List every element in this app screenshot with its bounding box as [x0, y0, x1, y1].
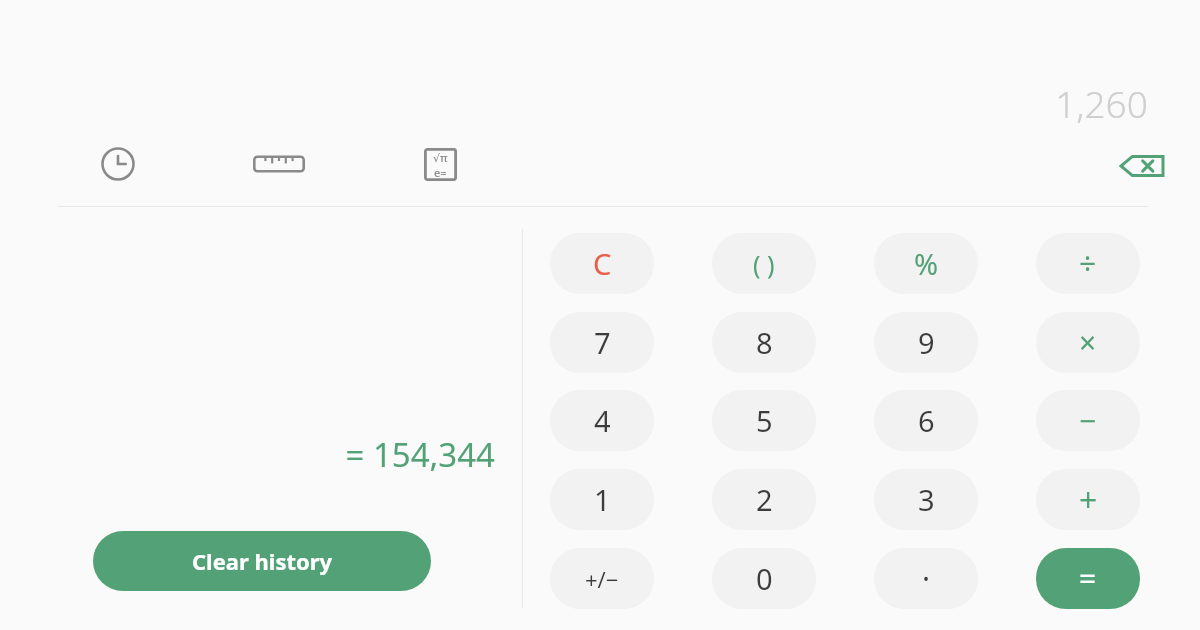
button[interactable]: 0 [712, 548, 816, 609]
staticText: = [1079, 558, 1097, 599]
staticText: · [922, 558, 931, 599]
button[interactable]: 5 [712, 390, 816, 451]
staticText: × [1079, 322, 1097, 363]
button[interactable]: Parentheses [712, 233, 816, 294]
staticText: 4 [594, 401, 611, 440]
staticText: e= [434, 165, 447, 180]
staticText: 8 [756, 323, 773, 362]
staticText: 7 [594, 323, 611, 362]
button[interactable]: Equals [1036, 548, 1140, 609]
staticText: ( ) [753, 247, 775, 281]
button[interactable]: Multiply [1036, 312, 1140, 373]
staticText: = 154,344 [0, 432, 495, 477]
button[interactable]: 6 [874, 390, 978, 451]
button[interactable]: 1 [550, 469, 654, 530]
button[interactable]: Toggle sign [550, 548, 654, 609]
button[interactable]: Decimal point [874, 548, 978, 609]
staticText: 5 [756, 401, 773, 440]
staticText: 1,260 [1055, 78, 1148, 128]
button[interactable]: Plus [1036, 469, 1140, 530]
button[interactable]: History [92, 138, 144, 190]
button[interactable]: Unit converter [253, 138, 305, 190]
staticText: + [1079, 478, 1098, 522]
button[interactable]: 2 [712, 469, 816, 530]
staticText: C [593, 244, 612, 283]
staticText: % [914, 244, 939, 283]
button[interactable]: 9 [874, 312, 978, 373]
button[interactable]: Clear [550, 233, 654, 294]
staticText: √π [433, 150, 448, 165]
button[interactable]: Minus [1036, 390, 1140, 451]
button[interactable]: 3 [874, 469, 978, 530]
button[interactable]: 8 [712, 312, 816, 373]
button[interactable]: Percent [874, 233, 978, 294]
button[interactable]: Clear history [93, 531, 431, 591]
button[interactable]: 4 [550, 390, 654, 451]
staticText: +/− [585, 564, 619, 594]
button[interactable]: Scientific calculator [414, 138, 466, 190]
staticText: 2 [756, 480, 773, 519]
button[interactable]: Backspace [1114, 138, 1170, 194]
staticText: 0 [756, 559, 773, 598]
staticText: Clear history [192, 546, 333, 576]
button[interactable]: Divide [1036, 233, 1140, 294]
staticText: 6 [918, 401, 935, 440]
staticText: ÷ [1079, 243, 1097, 284]
staticText: − [1079, 400, 1097, 441]
staticText: 3 [918, 480, 935, 519]
staticText: 9 [918, 323, 935, 362]
button[interactable]: 7 [550, 312, 654, 373]
staticText: 1 [594, 480, 611, 519]
